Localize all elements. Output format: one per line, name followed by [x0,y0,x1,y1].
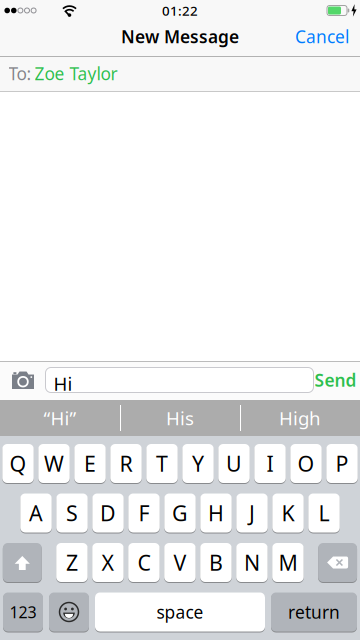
staticText: “Hi” [43,406,76,430]
staticText: E [84,449,96,478]
button[interactable]: Z [56,543,88,582]
button[interactable]: return [271,592,357,631]
button[interactable]: Emoji [49,592,89,631]
button[interactable]: V [164,543,196,582]
button[interactable]: R [110,444,142,483]
button[interactable]: His [120,400,239,436]
button[interactable]: N [236,543,268,582]
staticText: P [335,449,348,478]
staticText: His [166,406,194,430]
staticText: N [244,548,260,577]
staticText: O [297,449,314,478]
button[interactable]: 123 [3,592,43,631]
button[interactable]: A [20,493,52,532]
staticText: M [278,548,297,577]
button[interactable]: Message field [45,367,313,392]
staticText: V [173,548,186,577]
button[interactable]: Zoe Taylor [34,62,117,85]
staticText: return [288,600,340,623]
button[interactable]: D [92,493,124,532]
staticText: T [156,449,168,478]
staticText: R [119,449,132,478]
button[interactable]: X [92,543,124,582]
staticText: J [249,499,255,527]
staticText: High [279,406,321,430]
staticText: F [138,499,149,527]
staticText: 123 [9,601,36,623]
button[interactable]: F [128,493,160,532]
button[interactable]: U [218,444,250,483]
staticText: C [137,548,150,577]
button[interactable]: L [308,493,340,532]
staticText: To: [8,62,31,85]
button[interactable]: Delete [318,543,357,582]
staticText: Cancel [295,25,349,48]
staticText: Y [192,449,204,478]
staticText: B [209,548,223,577]
button[interactable]: Send [314,368,356,391]
button[interactable]: J [236,493,268,532]
button[interactable]: High [240,400,359,436]
staticText: New Message [121,25,239,48]
button[interactable]: C [128,543,160,582]
staticText: D [100,499,116,527]
button[interactable]: K [272,493,304,532]
button[interactable]: E [74,444,106,483]
button[interactable]: H [200,493,232,532]
button[interactable]: G [164,493,196,532]
button[interactable]: S [56,493,88,532]
button[interactable]: T [146,444,178,483]
staticText: L [318,499,329,527]
button[interactable]: “Hi” [0,400,119,436]
button[interactable]: B [200,543,232,582]
staticText: Send [314,368,356,391]
staticText: A [29,499,43,527]
staticText: K [281,499,294,527]
staticText: Hi [53,371,72,396]
staticText: Q [9,449,26,478]
button[interactable]: Cancel [295,25,349,48]
staticText: Zoe Taylor [34,62,117,85]
staticText: 01:22 [162,2,198,19]
staticText: space [156,600,203,623]
button[interactable]: Y [182,444,214,483]
button[interactable]: P [326,444,358,483]
staticText: I [266,449,273,478]
button[interactable]: W [38,444,70,483]
staticText: U [226,449,242,478]
staticText: X [101,548,114,577]
staticText: W [44,449,64,478]
button[interactable]: Q [2,444,34,483]
staticText: G [172,499,188,527]
button[interactable]: O [290,444,322,483]
staticText: S [66,499,78,527]
button[interactable]: Camera [11,368,35,392]
button[interactable]: space [95,592,265,631]
button[interactable]: Shift [3,543,42,582]
staticText: H [208,499,224,527]
staticText: Z [66,548,78,577]
button[interactable]: M [272,543,304,582]
button[interactable]: I [254,444,286,483]
